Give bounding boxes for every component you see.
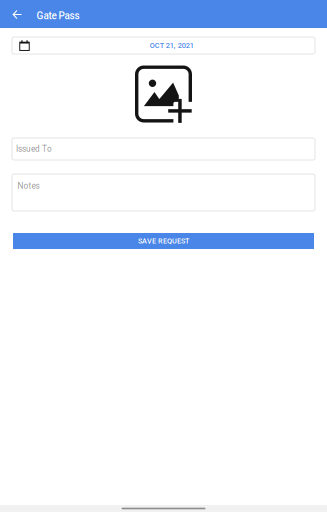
staticText: Notes (17, 181, 39, 191)
button[interactable]: SAVE REQUEST (13, 233, 314, 249)
staticText: Gate Pass (36, 10, 79, 22)
staticText: Issued To (16, 144, 52, 154)
staticText: OCT 21, 2021 (150, 41, 194, 50)
button[interactable]: OCT 21, 2021 (12, 37, 315, 54)
button[interactable]: Add photo (128, 63, 198, 125)
button[interactable]: Back (5, 0, 29, 28)
staticText: SAVE REQUEST (138, 237, 189, 245)
